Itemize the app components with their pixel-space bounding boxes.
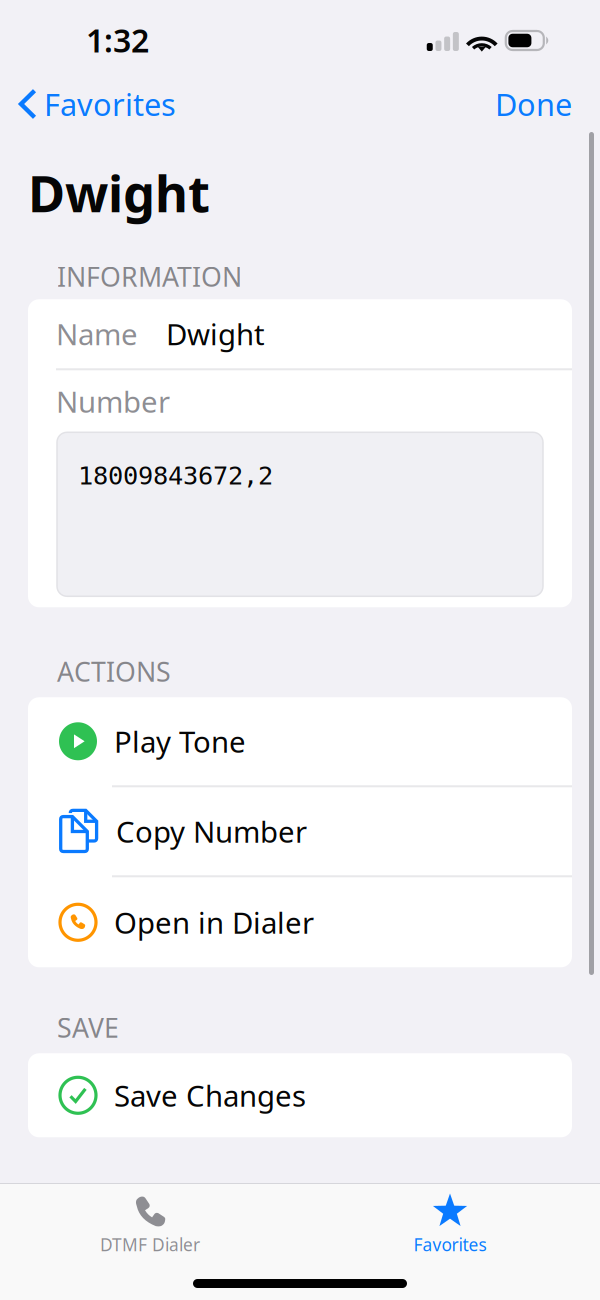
staticText: Dwight — [166, 314, 265, 353]
staticText: INFORMATION — [57, 259, 242, 294]
staticText: Done — [495, 84, 572, 124]
button[interactable]: Play Tone — [28, 697, 572, 787]
button[interactable]: DTMF Dialer — [0, 1184, 300, 1256]
button[interactable]: Favorites — [300, 1184, 600, 1256]
staticText: 1:32 — [86, 19, 149, 61]
staticText: SAVE — [57, 1010, 119, 1045]
staticText: Number — [56, 382, 170, 421]
staticText: Open in Dialer — [114, 903, 314, 942]
staticText: Copy Number — [116, 812, 307, 851]
button[interactable]: Favorites — [0, 76, 176, 132]
button[interactable]: Copy Number — [28, 787, 572, 877]
staticText: Favorites — [44, 84, 176, 124]
staticText: ACTIONS — [57, 654, 171, 689]
button[interactable]: Open in Dialer — [28, 877, 572, 967]
staticText: Play Tone — [114, 722, 246, 761]
staticText: Save Changes — [114, 1076, 306, 1115]
staticText: Name — [56, 314, 138, 353]
staticText: Favorites — [413, 1233, 486, 1256]
staticText: Dwight — [28, 159, 210, 226]
button[interactable]: Save Changes — [28, 1053, 572, 1137]
staticText: 18009843672,2 — [78, 461, 273, 490]
staticText: DTMF Dialer — [100, 1233, 200, 1256]
button[interactable]: Done — [495, 76, 600, 132]
